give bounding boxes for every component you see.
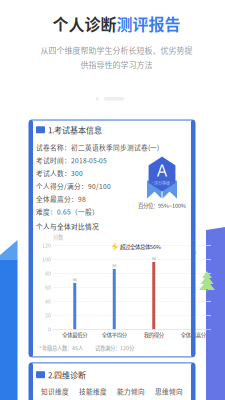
staticText: 1.考试基本信息 xyxy=(48,124,102,136)
staticText: 思维倾向 xyxy=(155,386,183,396)
staticText: 66 xyxy=(73,277,77,282)
staticText: 难度：0.65（一般） xyxy=(36,207,99,217)
staticText: 全体最高分：98 xyxy=(36,194,86,204)
staticText: 100 xyxy=(42,255,51,263)
staticText: 0 xyxy=(48,325,51,333)
staticText: 超过全体总体56% xyxy=(120,243,161,250)
staticText: 40 xyxy=(45,297,51,305)
staticText: 全体平均分 xyxy=(102,331,127,339)
staticText: 百分位：95%~100% xyxy=(138,202,186,209)
staticText: 个人与全体对比情况 xyxy=(36,221,99,231)
staticText: 96 xyxy=(152,256,156,261)
staticText: A xyxy=(156,161,167,180)
staticText: 我的得分 xyxy=(144,331,164,339)
staticText: 全体最低分 xyxy=(62,331,87,339)
staticText: 技能维度 xyxy=(79,386,107,396)
staticText: 从四个维度帮助学生分析长短板、优劣势提 xyxy=(40,44,192,56)
staticText: 考试人数：300 xyxy=(36,168,83,178)
staticText: 20 xyxy=(45,311,51,319)
staticText: 个人诊断 xyxy=(52,12,116,35)
staticText: 86 xyxy=(112,263,116,268)
staticText: ·评分等级· xyxy=(150,180,174,186)
staticText: 试卷名称：初二英语秋季同步测试卷(一) xyxy=(36,143,159,152)
staticText: 120 xyxy=(42,241,51,249)
staticText: 个人得分/满分：90/100 xyxy=(36,181,111,191)
staticText: 60 xyxy=(45,283,51,291)
staticText: 全体最高分 xyxy=(181,331,206,339)
staticText: 2.四维诊断 xyxy=(48,369,86,380)
staticText: 试卷满分：120分 xyxy=(95,344,134,352)
staticText: 考试时间：2018-05-05 xyxy=(36,155,107,165)
staticText: 知识维度 xyxy=(41,386,69,396)
staticText: 能力倾向 xyxy=(117,386,145,396)
staticText: 分数 xyxy=(53,233,63,241)
staticText: 105 xyxy=(190,249,196,255)
staticText: 供指导性的学习方法 xyxy=(80,59,152,70)
staticText: * 年级总人数：45人 xyxy=(39,344,83,352)
staticText: 测评报告 xyxy=(116,12,180,35)
staticText: 80 xyxy=(45,269,51,277)
